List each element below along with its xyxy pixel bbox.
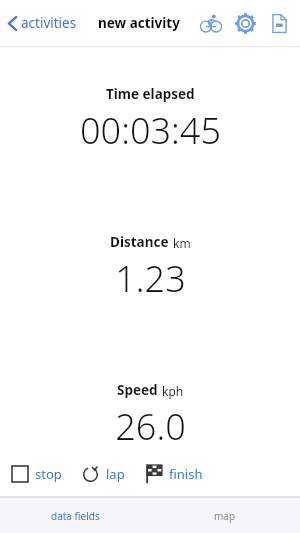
staticText: km <box>173 235 191 251</box>
staticText: 1.23 <box>115 254 186 303</box>
button[interactable]: lap <box>80 459 127 489</box>
button[interactable]: finish <box>143 460 205 488</box>
staticText: activities <box>21 14 77 32</box>
button[interactable]: stop <box>10 459 64 489</box>
staticText: stop <box>35 465 62 483</box>
staticText: Speed <box>117 381 158 399</box>
staticText: Time elapsed <box>106 85 195 103</box>
staticText: 00:03:45 <box>80 106 221 155</box>
staticText: 26.0 <box>115 402 186 451</box>
staticText: finish <box>169 465 203 483</box>
staticText: new activity <box>98 14 180 32</box>
staticText: kph <box>162 383 184 399</box>
button[interactable]: Settings <box>228 6 262 40</box>
button[interactable]: activities <box>0 8 85 38</box>
staticText: data fields <box>51 509 100 523</box>
button[interactable]: Export GPX <box>262 6 296 40</box>
staticText: lap <box>106 465 125 483</box>
button[interactable]: Activity type: cycling <box>194 6 228 40</box>
staticText: map <box>214 509 236 523</box>
button[interactable]: map <box>150 498 300 533</box>
button[interactable]: data fields <box>0 498 150 533</box>
staticText: Distance <box>110 233 169 251</box>
